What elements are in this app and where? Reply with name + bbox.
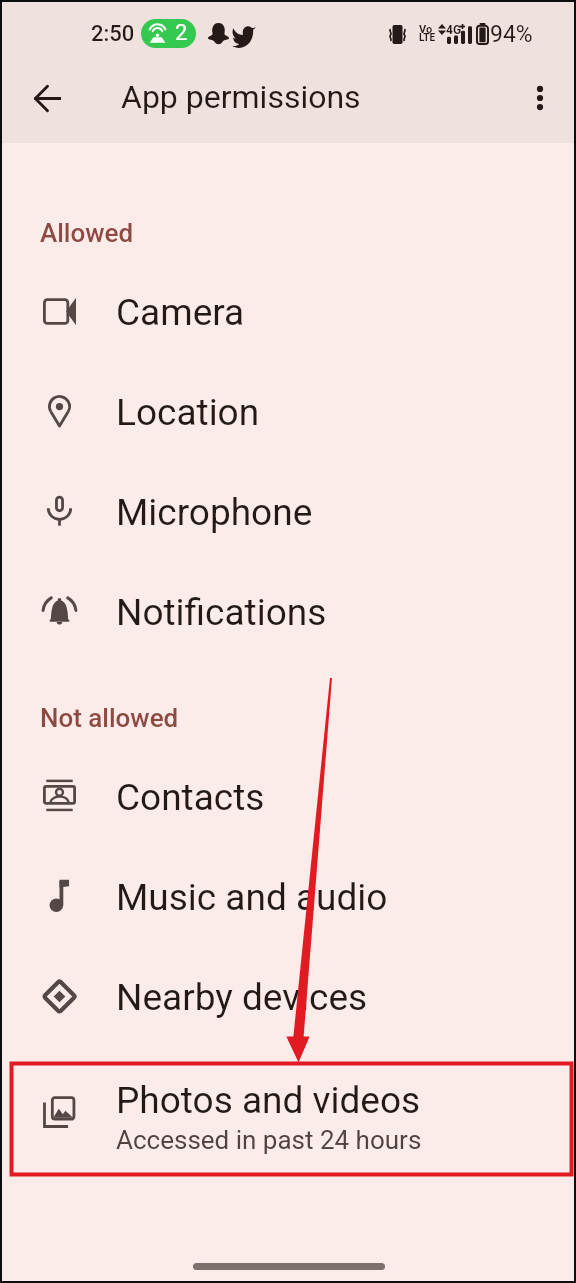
staticText: Contacts — [116, 776, 265, 819]
button[interactable]: Notifications — [0, 563, 576, 663]
staticText: Microphone — [116, 491, 313, 534]
staticText: Nearby devices — [116, 976, 368, 1019]
staticText: Not allowed — [40, 703, 179, 733]
staticText: 4G — [446, 23, 462, 37]
button[interactable]: Photos and videos — [0, 1062, 576, 1174]
staticText: 94% — [490, 21, 533, 48]
staticText: Location — [116, 391, 260, 434]
button[interactable]: Nearby devices — [0, 948, 576, 1048]
staticText: Camera — [116, 291, 245, 334]
staticText: Photos and videos — [116, 1079, 421, 1122]
button[interactable]: Music and audio — [0, 848, 576, 948]
staticText: Music and audio — [116, 876, 388, 919]
staticText: 2 — [175, 20, 188, 46]
staticText: 2:50 — [91, 21, 135, 47]
staticText: Notifications — [116, 591, 327, 634]
button[interactable]: Microphone — [0, 463, 576, 563]
button[interactable]: Contacts — [0, 748, 576, 848]
staticText: App permissions — [121, 78, 361, 116]
staticText: LTE — [419, 32, 436, 44]
staticText: Accessed in past 24 hours — [116, 1125, 422, 1155]
staticText: Vo — [419, 23, 433, 36]
staticText: Allowed — [40, 218, 134, 248]
button[interactable]: Navigate up — [23, 74, 71, 122]
button[interactable]: Camera — [0, 263, 576, 363]
button[interactable]: Location — [0, 363, 576, 463]
button[interactable]: More options — [516, 74, 564, 122]
